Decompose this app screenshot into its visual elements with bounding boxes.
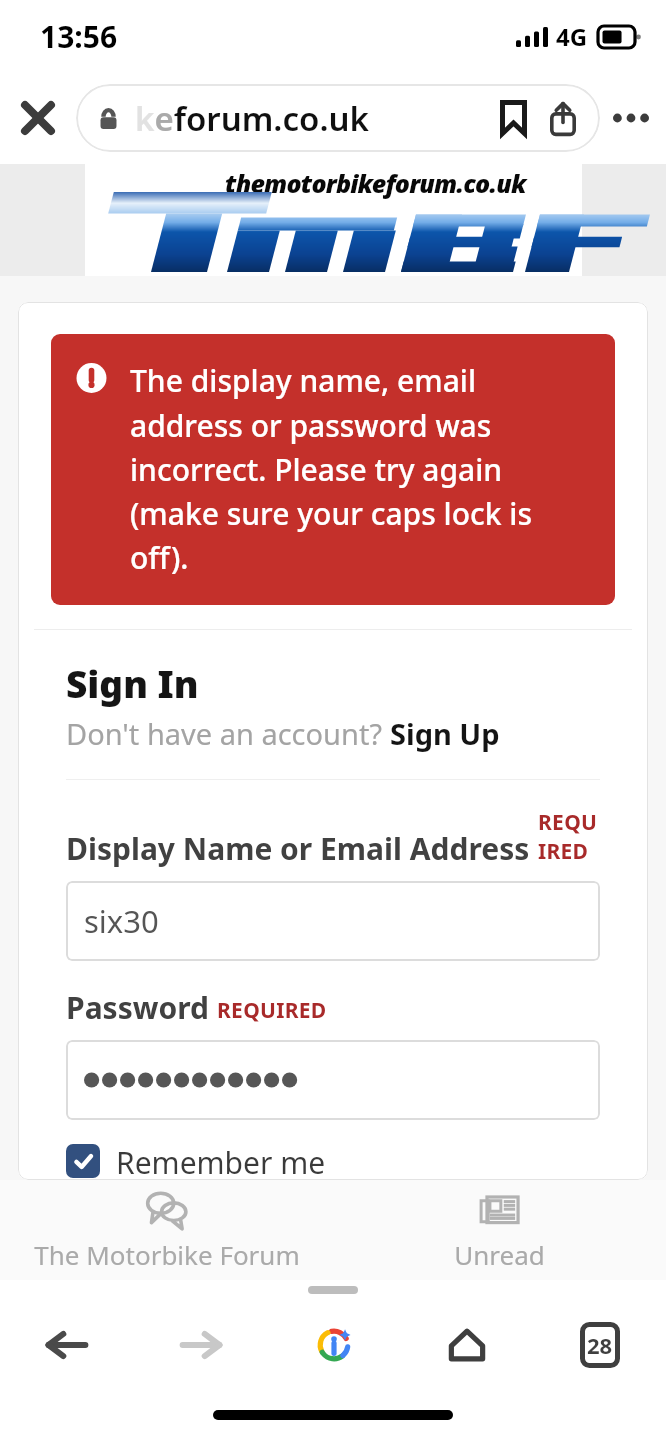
button[interactable]: Remember me	[66, 1142, 600, 1180]
button[interactable]: More options	[602, 89, 660, 147]
button[interactable]: Forward	[134, 1300, 267, 1390]
button[interactable]: Back	[0, 1300, 134, 1390]
staticText: The display name, email address or passw…	[130, 360, 595, 577]
button[interactable]	[66, 1040, 600, 1120]
staticText: Password	[66, 987, 209, 1028]
button[interactable]: Bookmark	[490, 95, 536, 141]
staticText: REQUIRED	[217, 996, 327, 1025]
staticText: themotorbikeforum.co.uk	[225, 166, 526, 200]
staticText: Display Name or Email Address	[66, 828, 530, 869]
button[interactable]: The Motorbike Forum	[0, 1180, 333, 1280]
button[interactable]: Home	[400, 1300, 533, 1390]
staticText: Unread	[454, 1237, 545, 1272]
staticText: 13:56	[40, 16, 118, 57]
staticText: Remember me	[116, 1142, 326, 1180]
staticText: 28	[587, 1330, 613, 1360]
button[interactable]: six30	[66, 881, 600, 961]
button[interactable]: Sign Up	[390, 714, 500, 753]
button[interactable]: Google Assistant	[267, 1300, 400, 1390]
button[interactable]: Close	[8, 88, 68, 148]
staticText: 4G	[556, 20, 588, 53]
staticText: six30	[84, 900, 159, 942]
staticText: Don't have an account?	[66, 714, 390, 753]
button[interactable]: Unread	[333, 1180, 666, 1280]
button[interactable]: keforum.co.uk	[76, 84, 600, 152]
button[interactable]: Tabs, 28 open	[533, 1300, 666, 1390]
staticText: keforum.co.uk	[135, 96, 369, 141]
staticText: REQUIRED	[538, 808, 600, 866]
button[interactable]: Sign In	[66, 658, 199, 708]
button[interactable]: Share	[540, 95, 586, 141]
staticText: The Motorbike Forum	[34, 1237, 300, 1272]
